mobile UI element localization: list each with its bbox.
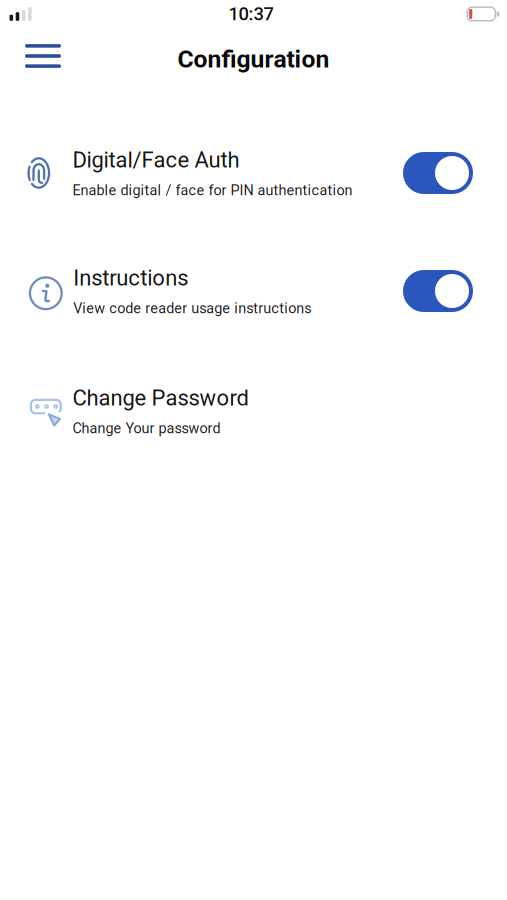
staticText: Digital/Face Auth — [72, 147, 239, 173]
staticText: View code reader usage instructions — [73, 300, 311, 317]
button[interactable]: Digital/Face Auth — [403, 152, 473, 194]
button[interactable]: Menu — [0, 44, 61, 68]
staticText: 10:37 — [228, 3, 273, 25]
button[interactable]: Change Password — [0, 379, 507, 443]
staticText: Configuration — [177, 44, 329, 73]
staticText: Enable digital / face for PIN authentica… — [72, 182, 352, 199]
staticText: Change Your password — [72, 420, 220, 437]
staticText: Change Password — [72, 385, 248, 411]
staticText: Instructions — [73, 265, 188, 291]
button[interactable]: Instructions — [403, 270, 473, 312]
